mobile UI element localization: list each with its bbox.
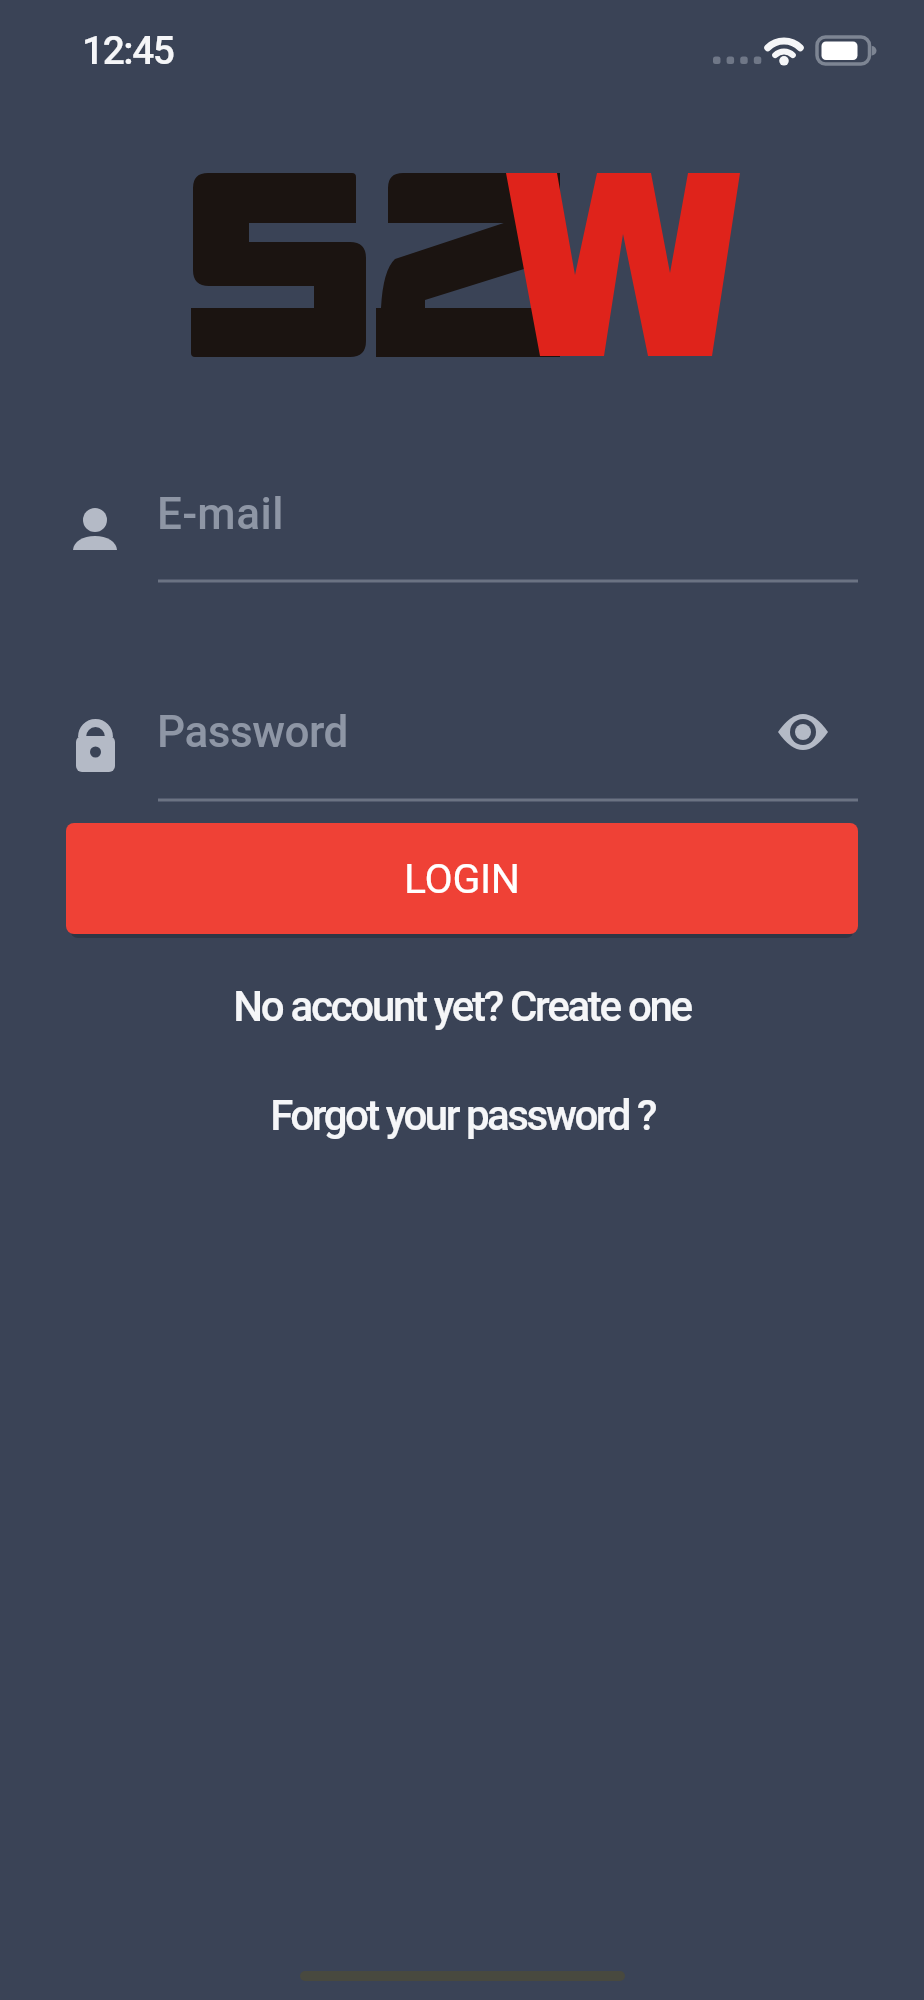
button[interactable]: LOGIN — [66, 823, 858, 934]
staticText: Password — [157, 706, 348, 758]
button[interactable]: E-mail — [60, 480, 860, 585]
button[interactable] — [766, 702, 842, 764]
button[interactable]: Password — [60, 698, 860, 803]
staticText: LOGIN — [404, 855, 520, 903]
staticText: E-mail — [157, 488, 284, 540]
button[interactable]: No account yet? Create one — [0, 975, 924, 1037]
button[interactable]: Forgot your password ? — [0, 1084, 924, 1146]
staticText: No account yet? Create one — [233, 982, 691, 1031]
staticText: 12:45 — [82, 28, 174, 74]
staticText: Forgot your password ? — [270, 1091, 655, 1140]
